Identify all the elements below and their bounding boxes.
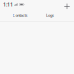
button[interactable]: Contacts xyxy=(5,11,35,19)
staticText: Contacts xyxy=(12,12,27,18)
button[interactable]: Logs xyxy=(35,11,65,19)
staticText: 1:11 xyxy=(3,1,13,8)
button[interactable]: Add xyxy=(62,0,72,11)
staticText: Logs xyxy=(46,12,54,18)
